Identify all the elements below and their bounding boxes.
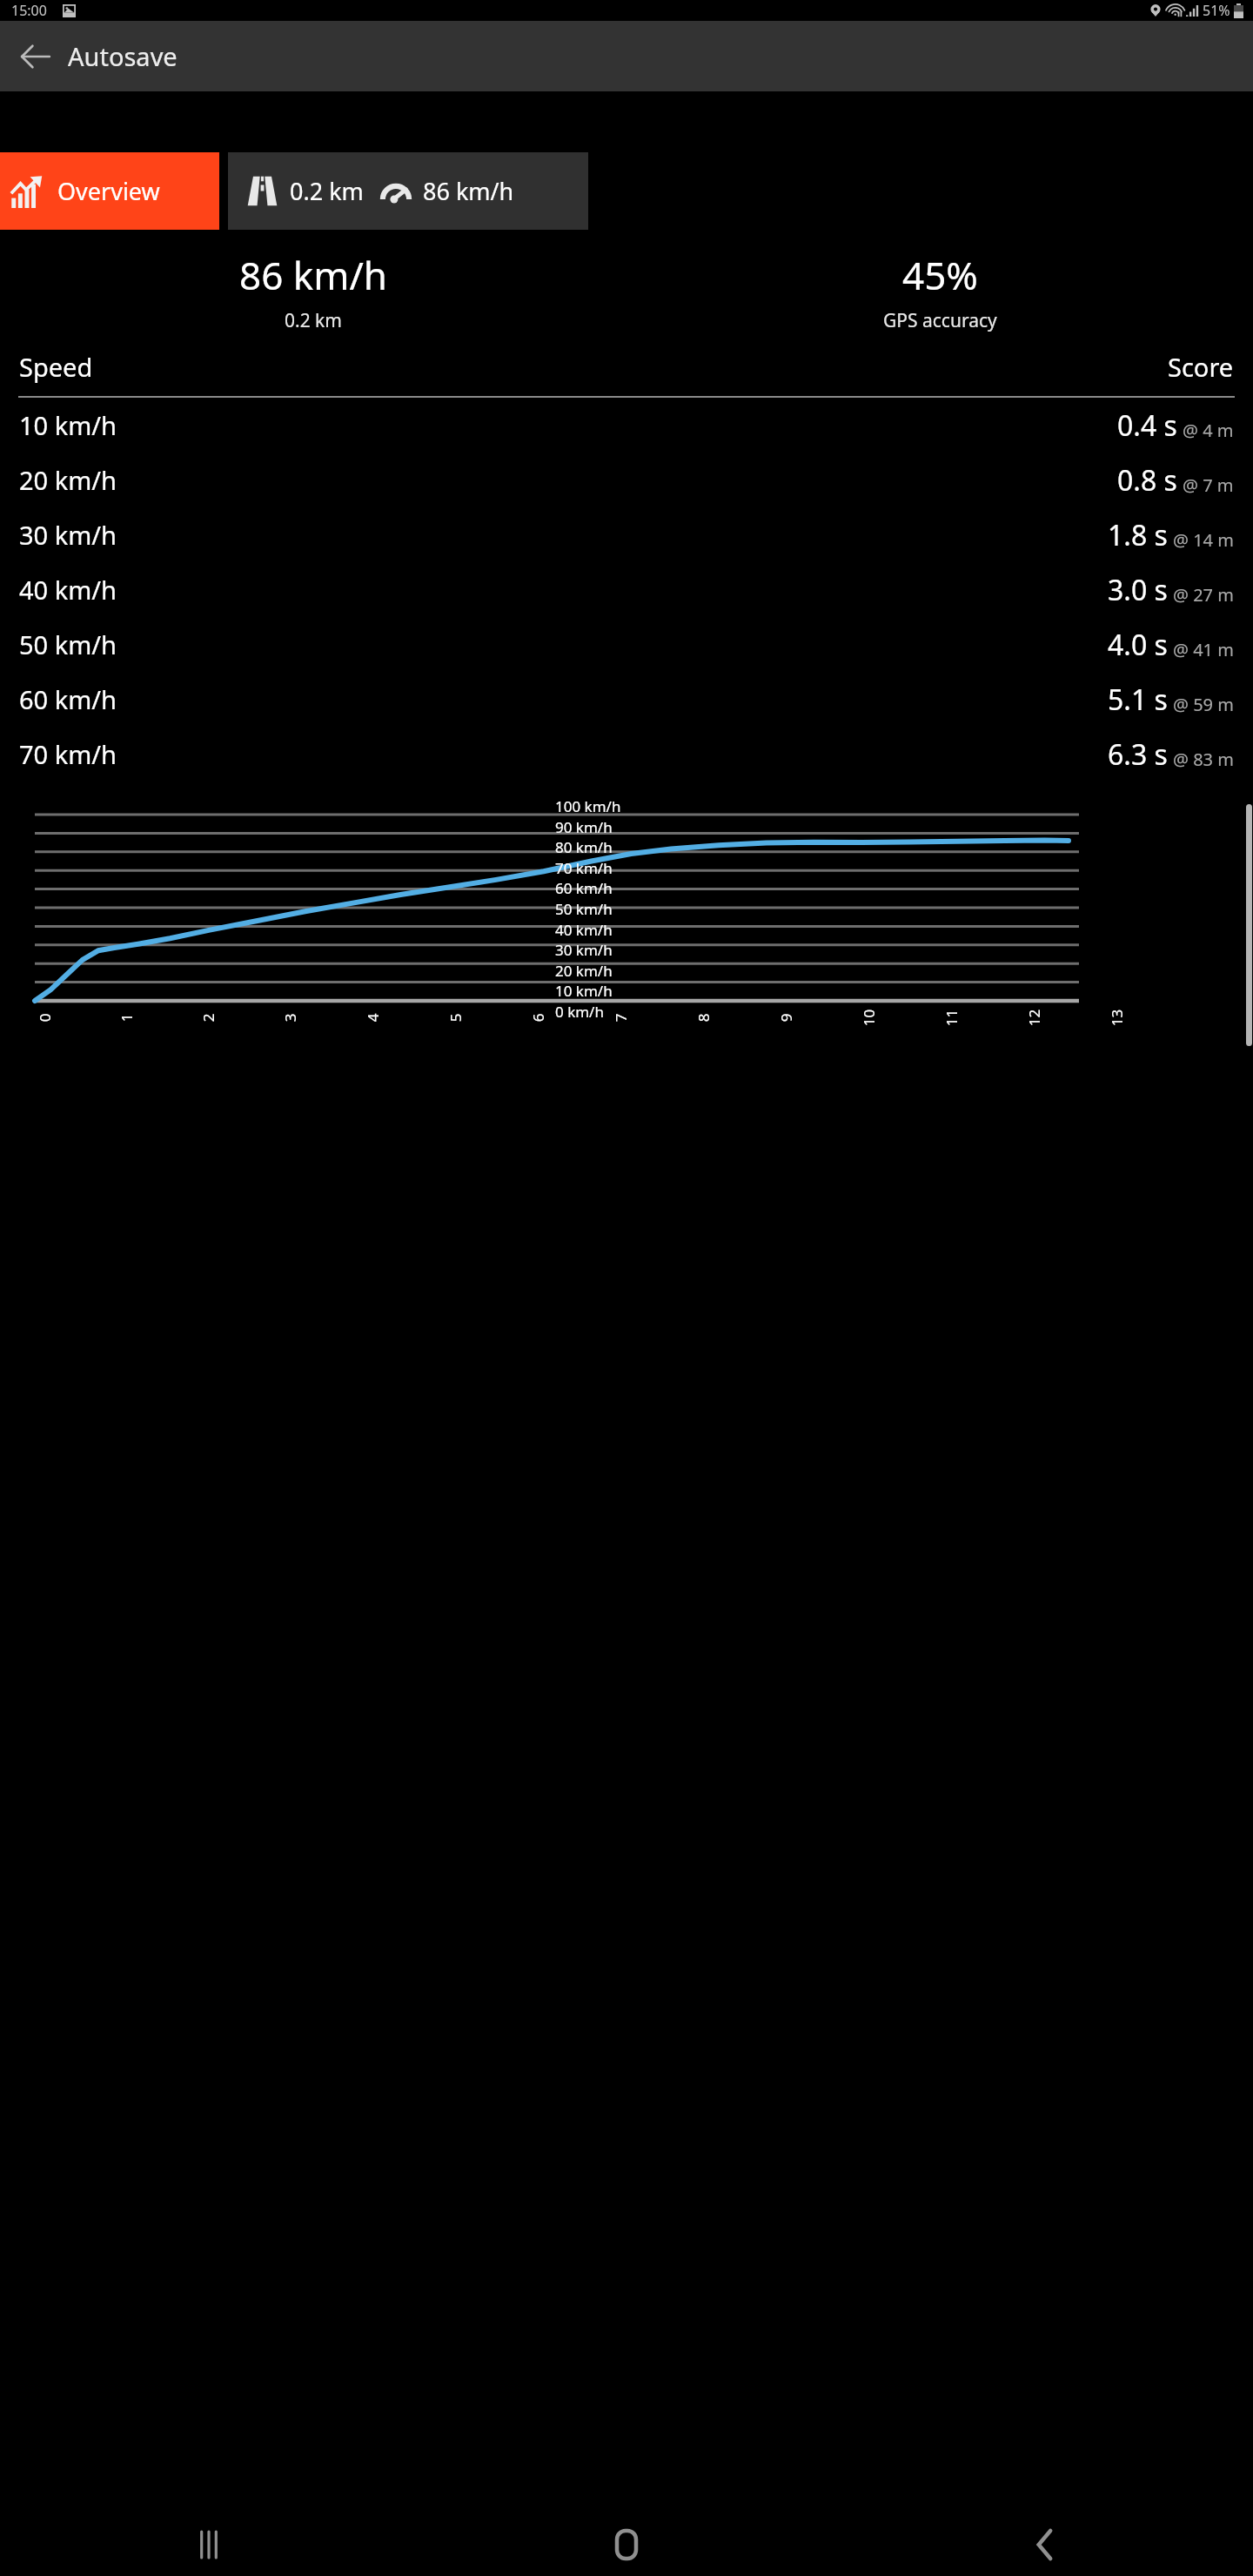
staticText: GPS accuracy bbox=[883, 308, 997, 333]
button[interactable]: 70 km/h bbox=[0, 727, 1253, 782]
staticText: 10 bbox=[858, 1009, 878, 1026]
staticText: 86 km/h bbox=[239, 249, 387, 301]
staticText: 3.0 s bbox=[1108, 571, 1168, 609]
staticText: @ 7 m bbox=[1183, 473, 1234, 497]
staticText: 45% bbox=[902, 249, 978, 301]
staticText: 2 bbox=[198, 1013, 218, 1022]
staticText: 90 km/h bbox=[555, 817, 613, 837]
staticText: 20 km/h bbox=[555, 961, 613, 981]
staticText: 10 km/h bbox=[555, 981, 613, 1001]
staticText: 3 bbox=[280, 1013, 300, 1022]
staticText: 30 km/h bbox=[19, 518, 117, 552]
staticText: 1.8 s bbox=[1108, 516, 1168, 554]
staticText: 70 km/h bbox=[19, 737, 117, 771]
staticText: 6.3 s bbox=[1108, 735, 1168, 774]
staticText: 50 km/h bbox=[555, 899, 613, 919]
staticText: 4 bbox=[362, 1013, 382, 1022]
staticText: 60 km/h bbox=[555, 878, 613, 898]
button[interactable]: 50 km/h bbox=[0, 617, 1253, 672]
staticText: @ 59 m bbox=[1173, 693, 1234, 716]
staticText: @ 83 m bbox=[1173, 748, 1234, 771]
button[interactable]: Home bbox=[418, 2513, 835, 2576]
staticText: 86 km/h bbox=[423, 175, 514, 207]
button[interactable]: 40 km/h bbox=[0, 562, 1253, 617]
staticText: 5 bbox=[445, 1013, 465, 1022]
staticText: 60 km/h bbox=[19, 682, 117, 716]
staticText: @ 14 m bbox=[1173, 528, 1234, 552]
staticText: 0 km/h bbox=[555, 1002, 604, 1022]
staticText: @ 41 m bbox=[1173, 638, 1234, 661]
staticText: 7 bbox=[610, 1013, 630, 1022]
staticText: 40 km/h bbox=[555, 920, 613, 940]
staticText: 0.4 s bbox=[1117, 406, 1177, 445]
staticText: Score bbox=[1168, 350, 1234, 384]
staticText: 5.1 s bbox=[1108, 681, 1168, 719]
staticText: 0.2 km bbox=[290, 175, 364, 207]
button[interactable]: 0.2 km bbox=[228, 152, 588, 230]
staticText: @ 4 m bbox=[1183, 419, 1234, 442]
button[interactable]: 20 km/h bbox=[0, 453, 1253, 507]
staticText: 100 km/h bbox=[555, 796, 621, 816]
button[interactable]: Back bbox=[12, 33, 59, 80]
staticText: Speed bbox=[19, 350, 93, 384]
staticText: 70 km/h bbox=[555, 858, 613, 878]
staticText: 9 bbox=[776, 1013, 796, 1022]
staticText: 0.8 s bbox=[1117, 461, 1177, 500]
staticText: 0.2 km bbox=[285, 308, 342, 333]
staticText: 11 bbox=[941, 1009, 961, 1026]
staticText: 12 bbox=[1024, 1009, 1044, 1026]
staticText: 4.0 s bbox=[1108, 626, 1168, 664]
button[interactable]: Overview bbox=[0, 152, 219, 230]
staticText: 80 km/h bbox=[555, 837, 613, 857]
staticText: 40 km/h bbox=[19, 573, 117, 607]
staticText: @ 27 m bbox=[1173, 583, 1234, 607]
staticText: 0 bbox=[34, 1013, 54, 1022]
staticText: 6 bbox=[528, 1013, 548, 1022]
staticText: 10 km/h bbox=[19, 408, 117, 442]
staticText: Overview bbox=[57, 175, 160, 207]
staticText: 50 km/h bbox=[19, 627, 117, 661]
button[interactable]: Back bbox=[835, 2513, 1253, 2576]
staticText: 1 bbox=[116, 1013, 136, 1022]
staticText: 8 bbox=[693, 1013, 713, 1022]
staticText: 13 bbox=[1106, 1009, 1126, 1026]
staticText: 15:00 bbox=[11, 1, 47, 20]
staticText: 30 km/h bbox=[555, 940, 613, 960]
staticText: 20 km/h bbox=[19, 463, 117, 497]
button[interactable]: Recents bbox=[0, 2513, 418, 2576]
staticText: Autosave bbox=[68, 39, 178, 73]
button[interactable]: 60 km/h bbox=[0, 672, 1253, 727]
button[interactable]: 30 km/h bbox=[0, 507, 1253, 562]
staticText: 51% bbox=[1203, 1, 1230, 20]
button[interactable]: 10 km/h bbox=[0, 398, 1253, 453]
